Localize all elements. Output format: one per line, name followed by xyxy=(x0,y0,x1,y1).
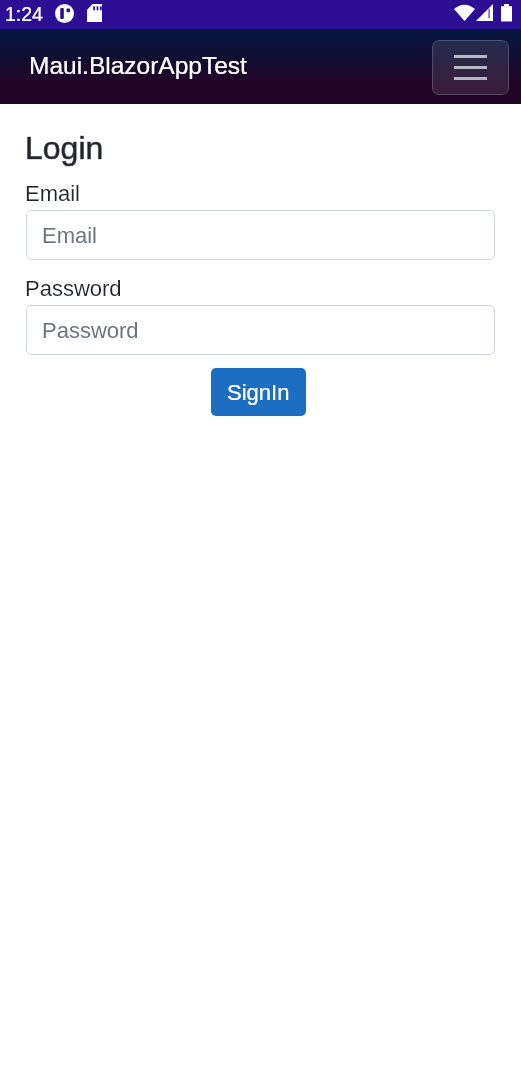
button[interactable]: SignIn xyxy=(211,368,306,416)
staticText: Maui.BlazorAppTest xyxy=(29,52,247,79)
staticText: SignIn xyxy=(227,380,290,405)
button[interactable]: Email xyxy=(26,210,495,260)
staticText: Email xyxy=(25,181,81,206)
staticText: Email xyxy=(42,223,98,248)
staticText: Password xyxy=(42,318,139,343)
staticText: 1:24 xyxy=(5,3,43,25)
button[interactable]: Toggle navigation menu xyxy=(432,40,509,95)
staticText: Login xyxy=(25,130,104,166)
staticText: Password xyxy=(25,276,122,301)
button[interactable]: Password xyxy=(26,305,495,355)
